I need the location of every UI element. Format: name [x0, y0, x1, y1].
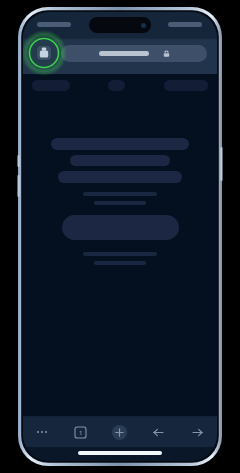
button[interactable] — [32, 80, 70, 91]
button[interactable] — [164, 80, 208, 91]
staticText: 1 — [79, 429, 83, 437]
button[interactable]: Forward — [178, 417, 217, 447]
button[interactable]: Site protections — [33, 42, 55, 64]
button[interactable]: Tabs — [61, 417, 100, 447]
button[interactable]: Back — [139, 417, 178, 447]
button[interactable] — [108, 80, 125, 91]
button[interactable]: More options — [23, 417, 61, 447]
button[interactable] — [62, 215, 179, 240]
button[interactable]: New tab — [100, 417, 139, 447]
button[interactable] — [61, 45, 207, 62]
